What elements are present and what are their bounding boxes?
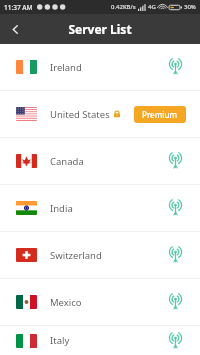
staticText: Server List (68, 21, 132, 37)
button[interactable]: Ireland (0, 44, 200, 90)
staticText: United States (50, 108, 110, 121)
button[interactable]: Premium (134, 106, 186, 123)
button[interactable]: Signal strength (164, 244, 186, 266)
staticText: 11:37 AM (4, 3, 33, 12)
staticText: Mexico (50, 296, 82, 309)
button[interactable]: Signal strength (164, 330, 186, 352)
button[interactable]: Mexico (0, 279, 200, 325)
button[interactable]: Signal strength (164, 150, 186, 172)
staticText: Canada (50, 155, 84, 168)
staticText: 0.42KB/s (111, 3, 136, 11)
staticText: Premium (142, 109, 178, 120)
button[interactable]: Back (0, 14, 30, 44)
button[interactable]: United States (0, 91, 200, 137)
button[interactable]: Signal strength (164, 197, 186, 219)
staticText: India (50, 202, 73, 215)
staticText: Italy (50, 334, 70, 347)
button[interactable]: Signal strength (164, 291, 186, 313)
button[interactable]: India (0, 185, 200, 231)
button[interactable]: Signal strength (164, 56, 186, 78)
button[interactable]: Italy (0, 326, 200, 355)
staticText: 4G (148, 3, 156, 11)
button[interactable]: Canada (0, 138, 200, 184)
button[interactable]: Switzerland (0, 232, 200, 278)
staticText: 30% (184, 3, 196, 11)
staticText: Ireland (50, 61, 82, 74)
staticText: Switzerland (50, 249, 102, 262)
